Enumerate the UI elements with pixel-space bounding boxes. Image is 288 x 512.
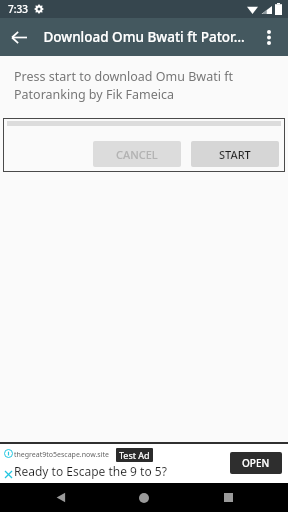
staticText: Download Omu Bwati ft Pator… xyxy=(38,28,250,46)
button[interactable]: OPEN xyxy=(230,452,282,474)
button[interactable]: Back xyxy=(0,18,38,56)
staticText: Press start to download Omu Bwati ft Pat… xyxy=(14,68,233,103)
button[interactable]: Close ad xyxy=(4,470,13,479)
staticText: Ready to Escape the 9 to 5? xyxy=(14,463,167,479)
staticText: Test Ad xyxy=(119,449,150,461)
staticText: OPEN xyxy=(242,456,270,470)
button[interactable]: Back xyxy=(36,483,84,512)
staticText: thegreat9to5escape.now.site xyxy=(14,450,109,460)
staticText: 7:33 xyxy=(8,2,28,16)
staticText: START xyxy=(219,147,251,162)
button[interactable]: Home xyxy=(120,483,168,512)
button[interactable]: Ad info xyxy=(4,449,13,458)
button[interactable]: CANCEL xyxy=(93,141,181,167)
button[interactable]: More options xyxy=(250,18,288,56)
staticText: CANCEL xyxy=(116,147,158,162)
button[interactable]: START xyxy=(191,141,279,167)
button[interactable]: Recent apps xyxy=(204,483,252,512)
